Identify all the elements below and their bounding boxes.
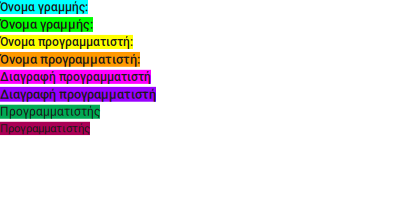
- staticText: Όνομα προγραμματιστή:: [0, 35, 133, 49]
- staticText: Προγραμματιστής: [0, 122, 90, 135]
- staticText: Διαγραφή προγραμματιστή: [0, 70, 151, 84]
- staticText: Διαγραφή προγραμματιστή: [0, 87, 156, 102]
- staticText: Όνομα γραμμής:: [0, 0, 88, 14]
- staticText: Όνομα γραμμής:: [0, 17, 93, 32]
- staticText: Προγραμματιστής: [0, 105, 100, 119]
- staticText: Όνομα προγραμματιστή:: [0, 52, 140, 67]
